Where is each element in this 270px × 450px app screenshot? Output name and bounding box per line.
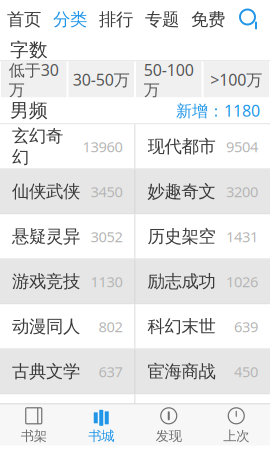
staticText: 30-50万 [73,69,130,90]
button[interactable]: 妙趣奇文 [135,169,270,213]
staticText: 游戏竞技 [12,271,80,292]
staticText: 802 [98,317,122,336]
staticText: 3200 [226,182,258,201]
staticText: 新增：1180 [176,100,260,121]
staticText: 389 [98,407,122,426]
button[interactable]: 免费 [185,4,231,34]
button[interactable]: 上次 [202,404,270,445]
staticText: 动漫同人 [12,316,80,337]
button[interactable]: 游戏竞技 [0,259,134,303]
button[interactable]: 动漫同人 [0,304,134,348]
staticText: 9504 [226,137,258,156]
staticText: 宦海商战 [147,361,215,382]
staticText: 上次 [223,428,249,444]
staticText: 免费 [191,9,225,30]
staticText: 13960 [82,137,122,156]
button[interactable]: 玄幻奇幻 [0,124,134,168]
staticText: 排行 [99,9,133,30]
button[interactable]: 发现 [135,404,202,445]
staticText: 50-100万 [144,59,194,100]
staticText: 首页 [7,9,41,30]
staticText: >100万 [210,69,262,90]
staticText: 妙趣奇文 [147,181,215,202]
staticText: 字数 [10,38,48,61]
button[interactable]: 现代都市 [135,124,270,168]
staticText: 1431 [226,227,258,246]
staticText: 3052 [90,227,122,246]
staticText: 450 [234,362,258,381]
staticText: 古典文学 [12,361,80,382]
staticText: 专题 [145,9,179,30]
staticText: 书架 [21,428,47,444]
staticText: 青春校园 [12,406,80,427]
staticText: 297 [234,407,258,426]
button[interactable]: 古典文学 [0,349,134,393]
button[interactable]: 军事战争 [135,394,270,438]
button[interactable]: 分类 [47,4,93,34]
button[interactable]: 低于30万 [1,61,66,97]
button[interactable]: 专题 [139,4,185,34]
staticText: 科幻末世 [147,316,215,337]
staticText: 励志成功 [147,271,215,292]
staticText: 分类 [53,9,87,30]
button[interactable]: 仙侠武侠 [0,169,134,213]
staticText: 639 [234,317,258,336]
button[interactable]: 宦海商战 [135,349,270,393]
staticText: 低于30万 [9,59,59,100]
button[interactable]: 悬疑灵异 [0,214,134,258]
staticText: 书城 [88,428,114,444]
button[interactable]: >100万 [203,61,269,97]
button[interactable]: 励志成功 [135,259,270,303]
staticText: 历史架空 [147,226,215,247]
button[interactable]: 排行 [93,4,139,34]
staticText: 悬疑灵异 [12,226,80,247]
staticText: 现代都市 [147,136,215,157]
staticText: 玄幻奇幻 [12,125,63,168]
staticText: 仙侠武侠 [12,181,80,202]
button[interactable]: 30-50万 [68,61,134,97]
button[interactable]: 50-100万 [136,61,201,97]
button[interactable]: 书架 [0,404,67,445]
button[interactable]: 科幻末世 [135,304,270,348]
staticText: 3450 [90,182,122,201]
button[interactable]: 首页 [1,4,47,34]
button[interactable]: 搜索 [231,4,269,34]
button[interactable]: 书城 [67,404,135,445]
staticText: 军事战争 [147,406,215,427]
staticText: 1130 [90,272,122,291]
staticText: 1026 [226,272,258,291]
staticText: 发现 [156,428,182,444]
staticText: 637 [98,362,122,381]
button[interactable]: 青春校园 [0,394,134,438]
staticText: 男频 [10,99,48,122]
button[interactable]: 历史架空 [135,214,270,258]
